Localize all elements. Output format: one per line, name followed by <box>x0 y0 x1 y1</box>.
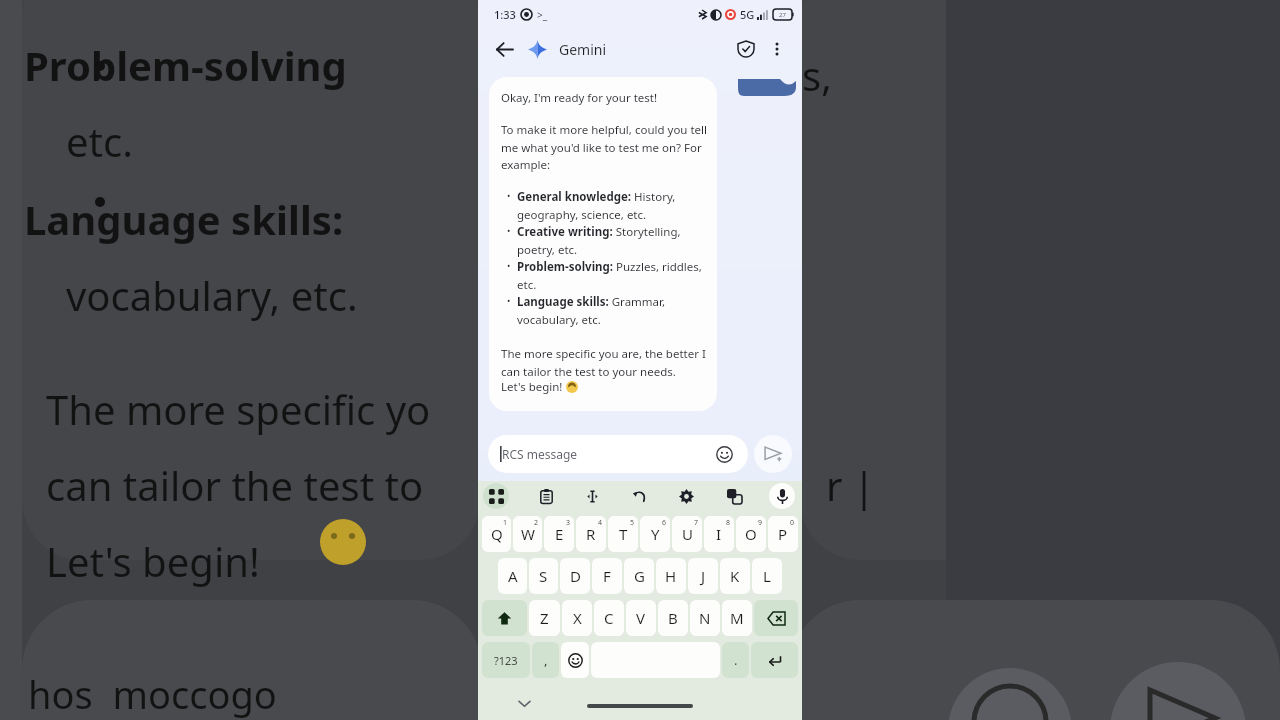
staticText: O <box>745 524 757 544</box>
button[interactable]: L <box>752 558 782 594</box>
staticText: 5G <box>740 7 755 22</box>
button[interactable]: ?123 <box>482 642 530 678</box>
button[interactable]: Emoji <box>561 642 589 678</box>
staticText: r | <box>826 458 875 512</box>
staticText: . <box>734 651 738 669</box>
staticText: N <box>699 608 711 628</box>
button[interactable]: J <box>688 558 718 594</box>
button[interactable]: Period <box>722 642 749 678</box>
staticText: T <box>619 524 628 544</box>
staticText: D <box>570 566 581 586</box>
staticText: E <box>555 524 564 544</box>
button[interactable]: Enter <box>751 642 798 678</box>
staticText: Let's begin! <box>46 534 260 588</box>
staticText: Problem-solving: Puzzles, riddles, etc. <box>517 259 707 292</box>
button[interactable]: Q <box>482 516 511 552</box>
staticText: Y <box>651 524 660 544</box>
button[interactable]: Okay, I'm ready for your test! <box>489 77 717 411</box>
button[interactable]: RCS message <box>488 435 748 473</box>
staticText: M <box>730 608 744 628</box>
button[interactable]: T <box>608 516 638 552</box>
staticText: 7 <box>694 518 699 528</box>
button[interactable]: Apps <box>483 483 509 509</box>
staticText: General knowledge: History, geography, s… <box>517 189 707 222</box>
staticText: H <box>665 566 677 586</box>
button[interactable]: K <box>720 558 750 594</box>
button[interactable]: More options <box>762 34 792 64</box>
button[interactable]: Privacy <box>730 33 762 65</box>
button[interactable]: P <box>768 516 798 552</box>
staticText: hos moccogo <box>28 668 277 720</box>
button[interactable]: Translate <box>721 483 747 509</box>
button[interactable]: C <box>594 600 624 636</box>
staticText: Gemini <box>559 40 607 59</box>
button[interactable]: V <box>626 600 656 636</box>
button[interactable]: Hide keyboard <box>514 693 534 713</box>
button[interactable]: Comma <box>532 642 559 678</box>
button[interactable]: M <box>722 600 752 636</box>
button[interactable]: Undo <box>626 483 652 509</box>
button[interactable]: S <box>529 558 558 594</box>
staticText: s, <box>802 48 832 102</box>
staticText: Creative writing: Storytelling, poetry, … <box>517 224 707 257</box>
button[interactable]: Voice input <box>769 483 795 509</box>
button[interactable]: Send <box>754 435 792 473</box>
button[interactable]: I <box>704 516 734 552</box>
button[interactable]: Clipboard <box>533 483 559 509</box>
button[interactable]: E <box>544 516 574 552</box>
staticText: U <box>682 524 693 544</box>
staticText: R <box>586 524 596 544</box>
staticText: L <box>763 566 771 586</box>
staticText: • <box>507 294 511 306</box>
button[interactable]: Emoji <box>712 442 736 466</box>
staticText: 9 <box>758 518 763 528</box>
button[interactable]: Settings <box>673 483 699 509</box>
button[interactable]: A <box>498 558 527 594</box>
button[interactable]: Back <box>488 33 520 65</box>
staticText: Language skills: Grammar, vocabulary, et… <box>517 294 707 327</box>
staticText: , <box>544 651 548 669</box>
button[interactable]: Shift <box>482 600 527 636</box>
button[interactable]: R <box>576 516 606 552</box>
button[interactable]: H <box>656 558 686 594</box>
staticText: K <box>730 566 740 586</box>
button[interactable]: Text editing <box>579 483 605 509</box>
staticText: Problem-solving <box>24 38 347 92</box>
button[interactable]: Backspace <box>754 600 798 636</box>
button[interactable]: W <box>513 516 542 552</box>
button[interactable]: U <box>672 516 702 552</box>
staticText: can tailor the test to <box>46 458 424 512</box>
staticText: X <box>573 608 582 628</box>
staticText: To make it more helpful, could you tell … <box>501 122 707 172</box>
button[interactable]: N <box>690 600 720 636</box>
staticText: • <box>507 224 511 236</box>
staticText: The more specific you are, the better I … <box>501 346 707 379</box>
staticText: C <box>604 608 614 628</box>
button[interactable]: O <box>736 516 766 552</box>
staticText: Q <box>491 524 503 544</box>
button[interactable]: B <box>658 600 688 636</box>
staticText: 1 <box>503 518 508 528</box>
button[interactable]: F <box>592 558 622 594</box>
staticText: >_ <box>537 8 548 22</box>
staticText: 27 <box>779 11 786 19</box>
staticText: Let's begin! <box>501 379 566 395</box>
staticText: W <box>521 524 535 544</box>
staticText: G <box>634 566 645 586</box>
staticText: 8 <box>726 518 731 528</box>
button[interactable]: Y <box>640 516 670 552</box>
staticText: I <box>716 524 722 544</box>
staticText: 4 <box>598 518 603 528</box>
staticText: Okay, I'm ready for your test! <box>501 90 658 106</box>
button[interactable]: G <box>624 558 654 594</box>
button[interactable]: D <box>560 558 590 594</box>
staticText: A <box>508 566 518 586</box>
staticText: 3 <box>566 518 571 528</box>
button[interactable]: Z <box>529 600 560 636</box>
button[interactable]: X <box>562 600 592 636</box>
staticText: ?123 <box>494 653 518 668</box>
staticText: 6 <box>662 518 667 528</box>
staticText: 5 <box>630 518 635 528</box>
staticText: Language skills: <box>24 192 344 246</box>
